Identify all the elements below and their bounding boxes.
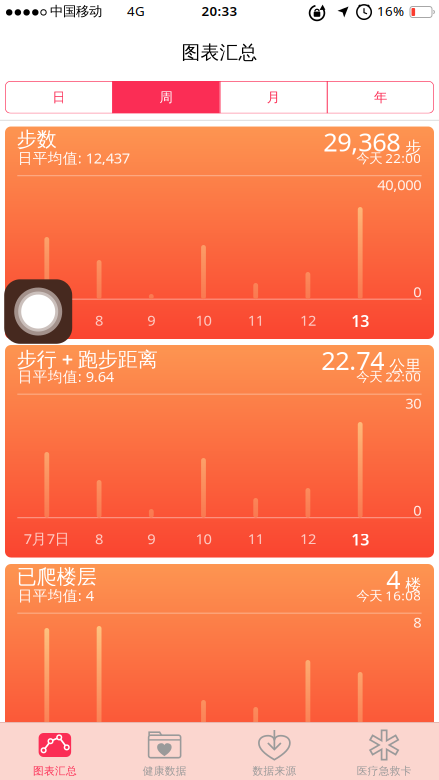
button[interactable]: 数据来源 (219, 722, 329, 780)
button[interactable]: 周 (112, 81, 219, 113)
staticText: 20:33 (201, 2, 237, 20)
staticText: 日平均值: 9.64 (18, 366, 114, 386)
staticText: 22.74 公里 (321, 343, 421, 377)
staticText: 今天 22:00 (356, 367, 421, 385)
staticText: 月 (267, 89, 280, 105)
staticText: 数据来源 (252, 764, 296, 778)
staticText: 今天 16:08 (356, 586, 421, 604)
button[interactable]: 图表汇总 (0, 722, 110, 780)
staticText: 8 (95, 529, 103, 548)
staticText: 医疗急救卡 (357, 764, 412, 778)
staticText: 12 (300, 529, 316, 548)
staticText: 9 (147, 310, 155, 330)
staticText: 日平均值: 12,437 (18, 148, 130, 167)
staticText: 图表汇总 (181, 41, 257, 64)
staticText: 11 (248, 310, 264, 330)
button[interactable]: 日 (5, 81, 112, 113)
staticText: 10 (195, 310, 211, 330)
staticText: 4 楼 (386, 562, 421, 596)
staticText: 40,000 (377, 175, 421, 194)
staticText: 步数 (17, 127, 57, 152)
staticText: 0 (413, 282, 421, 301)
staticText: 29,368 步 (323, 125, 421, 158)
staticText: 周 (159, 89, 172, 105)
staticText: 10 (195, 529, 211, 548)
button[interactable]: 年 (327, 81, 434, 113)
staticText: 7月7日 (24, 310, 70, 330)
staticText: 9 (147, 529, 155, 548)
staticText: 8 (95, 310, 103, 330)
staticText: 步行 + 跑步距离 (17, 345, 158, 372)
button[interactable]: 健康数据 (110, 722, 220, 780)
staticText: 日 (52, 89, 65, 105)
staticText: 7月7日 (24, 529, 70, 548)
staticText: 30 (405, 393, 421, 413)
button[interactable]: 已爬楼层 (5, 564, 434, 776)
staticText: 4G (127, 2, 145, 20)
staticText: 年 (374, 89, 387, 105)
staticText: 健康数据 (143, 764, 187, 778)
staticText: 16% (377, 2, 404, 20)
button[interactable]: AssistiveTouch (4, 279, 72, 344)
staticText: 已爬楼层 (17, 564, 97, 589)
staticText: 0 (413, 500, 421, 520)
staticText: 8 (413, 612, 421, 632)
staticText: 12 (300, 310, 316, 330)
staticText: 13 (351, 310, 369, 331)
staticText: 11 (248, 529, 264, 548)
staticText: 0 (413, 719, 421, 739)
staticText: 13 (351, 529, 369, 550)
staticText: 图表汇总 (33, 764, 77, 778)
staticText: 中国移动 (50, 3, 102, 19)
staticText: 今天 22:00 (356, 149, 421, 167)
button[interactable]: 步行 + 跑步距离 (5, 345, 434, 557)
staticText: 日平均值: 4 (18, 585, 94, 605)
button[interactable]: 医疗急救卡 (329, 722, 439, 780)
button[interactable]: 步数 (5, 126, 434, 339)
button[interactable]: 月 (219, 81, 327, 113)
